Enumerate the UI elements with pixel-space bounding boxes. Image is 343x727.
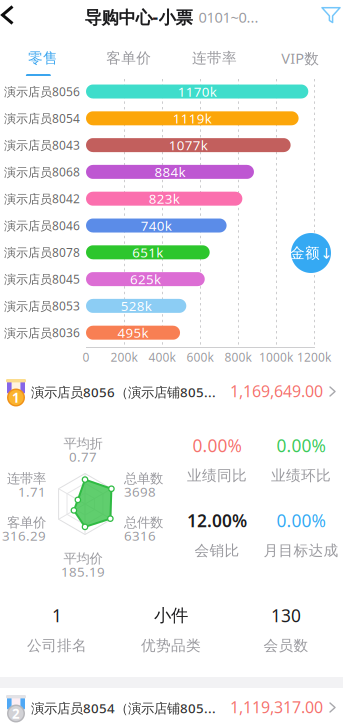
- staticText: 演示店员8046: [4, 217, 80, 233]
- staticText: 演示店员8036: [4, 325, 80, 341]
- staticText: 2: [12, 705, 20, 722]
- button[interactable]: 1: [0, 374, 343, 408]
- staticText: 演示店员8043: [4, 137, 80, 153]
- staticText: 495k: [117, 324, 148, 341]
- staticText: 1.71: [18, 483, 46, 500]
- staticText: 会销比: [194, 541, 239, 559]
- staticText: 740k: [141, 217, 172, 234]
- staticText: 1200k: [297, 349, 331, 365]
- staticText: 1: [52, 604, 62, 627]
- staticText: 金额↓: [290, 244, 332, 262]
- staticText: 800k: [224, 349, 251, 365]
- staticText: 1077k: [169, 136, 208, 154]
- staticText: 0.00%: [276, 509, 325, 532]
- button[interactable]: Back: [0, 0, 30, 34]
- button[interactable]: 零售: [0, 34, 86, 76]
- staticText: 演示店员8054: [4, 110, 80, 126]
- staticText: 651k: [132, 243, 163, 261]
- staticText: 130: [271, 604, 301, 627]
- staticText: 185.19: [61, 563, 105, 580]
- staticText: 1119k: [173, 109, 212, 127]
- staticText: 导购中心-小票: [84, 5, 192, 28]
- staticText: 演示店员8042: [4, 191, 80, 207]
- staticText: 客单价: [106, 49, 151, 67]
- staticText: 0.00%: [276, 434, 325, 457]
- staticText: 总单数: [124, 470, 163, 487]
- staticText: 0101~0...: [198, 7, 258, 27]
- button[interactable]: VIP数: [257, 34, 343, 76]
- staticText: 0: [82, 349, 89, 365]
- staticText: 演示店员8054（演示店铺805...: [31, 699, 216, 717]
- staticText: 528k: [121, 297, 152, 315]
- button[interactable]: 2: [0, 690, 343, 724]
- staticText: 演示店员8053: [4, 298, 80, 314]
- staticText: 零售: [28, 49, 58, 67]
- staticText: 演示店员8056（演示店铺805...: [31, 383, 216, 401]
- staticText: 总件数: [124, 514, 163, 531]
- button[interactable]: Filter: [312, 0, 343, 32]
- staticText: 1: [12, 389, 20, 406]
- staticText: 1000k: [259, 349, 293, 365]
- staticText: 1,169,649.00: [230, 380, 323, 402]
- staticText: 316.29: [2, 527, 46, 544]
- staticText: 连带率: [7, 470, 46, 487]
- staticText: 0.77: [69, 448, 97, 465]
- staticText: 公司排名: [27, 636, 87, 654]
- staticText: 1170k: [178, 83, 217, 100]
- staticText: 优势品类: [141, 636, 201, 654]
- staticText: 625k: [130, 270, 161, 288]
- staticText: 884k: [154, 163, 185, 181]
- staticText: 400k: [148, 349, 175, 365]
- staticText: 业绩同比: [187, 466, 247, 484]
- staticText: 演示店员8045: [4, 271, 80, 287]
- staticText: 演示店员8056: [4, 83, 80, 99]
- staticText: 平均折: [63, 435, 102, 452]
- staticText: 0.00%: [192, 434, 241, 457]
- staticText: 月目标达成: [263, 541, 338, 559]
- staticText: 业绩环比: [271, 466, 331, 484]
- button[interactable]: 金额↓: [291, 233, 331, 273]
- staticText: 演示店员8068: [4, 164, 80, 180]
- staticText: 1,119,317.00: [230, 696, 323, 718]
- staticText: 演示店员8078: [4, 244, 80, 260]
- staticText: 会员数: [263, 636, 308, 654]
- staticText: 连带率: [192, 49, 237, 67]
- staticText: 6316: [124, 527, 156, 544]
- staticText: 600k: [186, 349, 213, 365]
- button[interactable]: 连带率: [171, 34, 257, 76]
- staticText: 823k: [149, 190, 180, 207]
- staticText: 200k: [110, 349, 137, 365]
- staticText: 平均价: [63, 550, 102, 567]
- staticText: VIP数: [281, 48, 319, 68]
- staticText: 3698: [124, 483, 156, 500]
- staticText: 12.00%: [187, 509, 247, 532]
- staticText: 小件: [154, 605, 188, 626]
- button[interactable]: 客单价: [86, 34, 172, 76]
- staticText: 客单价: [7, 514, 46, 531]
